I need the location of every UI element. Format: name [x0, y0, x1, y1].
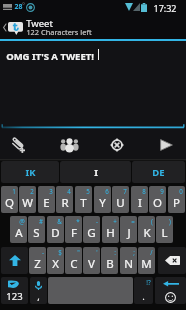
staticText: Tweet — [26, 17, 53, 30]
staticText: 5 — [86, 187, 90, 195]
button[interactable]: ' — [83, 247, 100, 274]
button[interactable]: 8 — [131, 186, 148, 213]
button[interactable]: Tweet — [26, 14, 126, 40]
button[interactable]: $ — [47, 247, 64, 274]
button[interactable]: I — [60, 161, 131, 183]
button[interactable]: 5 — [75, 186, 92, 213]
button[interactable]: 2 — [19, 186, 36, 213]
button[interactable]: - — [29, 247, 46, 274]
staticText: G — [87, 225, 96, 241]
button[interactable]: Navigate up — [0, 14, 26, 40]
button[interactable]: Backspace — [158, 247, 186, 274]
button[interactable]: Attach media — [4, 132, 40, 159]
staticText: A — [15, 225, 23, 241]
staticText: ' — [96, 248, 98, 256]
staticText: @ — [19, 217, 25, 225]
button[interactable]: & — [47, 216, 64, 243]
staticText: 4 — [67, 187, 71, 195]
staticText: I — [138, 195, 142, 211]
button[interactable]: Voice input — [30, 277, 47, 304]
button[interactable]: - — [83, 216, 100, 243]
staticText: 0 — [179, 187, 183, 195]
button[interactable]: 3 — [38, 186, 55, 213]
staticText: / — [150, 248, 153, 256]
staticText: 7 — [123, 187, 127, 195]
button[interactable]: = — [120, 216, 137, 243]
staticText: X — [52, 256, 59, 272]
staticText: E — [43, 195, 50, 211]
staticText: 17:32 — [153, 2, 177, 14]
button[interactable]: : — [101, 247, 118, 274]
button[interactable]: Shift — [1, 247, 28, 274]
staticText: R — [61, 195, 69, 211]
staticText: L — [161, 225, 168, 241]
staticText: 2 — [30, 187, 34, 195]
button[interactable]: 7 — [112, 186, 129, 213]
staticText: & — [57, 217, 62, 225]
button[interactable]: Add location — [99, 132, 135, 159]
staticText: = — [131, 217, 135, 225]
staticText: 122 Characters left — [26, 27, 92, 37]
button[interactable]: @ — [10, 216, 27, 243]
staticText: . — [142, 290, 145, 303]
staticText: 6 — [105, 187, 109, 195]
button[interactable]: ( — [138, 216, 155, 243]
staticText: !? — [146, 278, 151, 286]
staticText: 28 — [14, 2, 23, 12]
button[interactable]: + — [102, 216, 119, 243]
button[interactable]: Send tweet — [148, 132, 184, 159]
staticText: I — [94, 166, 98, 179]
staticText: K — [143, 225, 151, 241]
staticText: - — [42, 248, 44, 256]
staticText: W — [22, 195, 33, 211]
staticText: S — [33, 225, 40, 241]
staticText: : — [114, 248, 116, 256]
button[interactable]: 4 — [56, 186, 73, 213]
staticText: P — [173, 195, 180, 211]
staticText: C — [70, 256, 78, 272]
staticText: - — [96, 217, 98, 225]
staticText: ) — [169, 217, 171, 225]
staticText: , — [37, 290, 40, 303]
button[interactable]: 0 — [168, 186, 185, 213]
staticText: V — [88, 256, 95, 272]
staticText: * — [76, 217, 80, 225]
button[interactable]: * — [65, 216, 82, 243]
button[interactable]: 1 — [1, 186, 18, 213]
button[interactable]: Symbols — [1, 277, 28, 304]
staticText: M — [141, 256, 152, 272]
staticText: # — [39, 217, 43, 225]
staticText: " — [77, 248, 80, 256]
staticText: J — [127, 225, 131, 241]
button[interactable]: Tag people — [51, 132, 87, 159]
button[interactable]: ) — [156, 216, 173, 243]
staticText: DE — [152, 166, 165, 179]
button[interactable]: # — [28, 216, 45, 243]
button[interactable]: " — [65, 247, 82, 274]
staticText: H — [106, 225, 115, 241]
button[interactable]: !? — [134, 277, 153, 304]
staticText: IK — [25, 166, 36, 179]
staticText: ° — [22, 1, 25, 11]
staticText: ; — [133, 248, 135, 256]
staticText: $ — [58, 248, 62, 256]
staticText: + — [113, 217, 117, 225]
button[interactable]: / — [138, 247, 155, 274]
staticText: OMG IT'S A TWEET! — [6, 50, 94, 63]
staticText: ( — [151, 217, 153, 225]
staticText: Y — [99, 195, 106, 211]
staticText: B — [106, 256, 114, 272]
staticText: Q — [5, 195, 14, 211]
button[interactable]: 6 — [94, 186, 111, 213]
button[interactable]: 9 — [149, 186, 166, 213]
staticText: 123 — [6, 290, 23, 303]
button[interactable]: IK — [1, 161, 59, 183]
button[interactable]: Enter — [155, 277, 186, 304]
staticText: 1 — [12, 187, 16, 195]
staticText: 8 — [142, 187, 146, 195]
button[interactable]: DE — [132, 161, 185, 183]
button[interactable]: ; — [120, 247, 137, 274]
staticText: 3 — [49, 187, 53, 195]
staticText: Z — [34, 256, 41, 272]
